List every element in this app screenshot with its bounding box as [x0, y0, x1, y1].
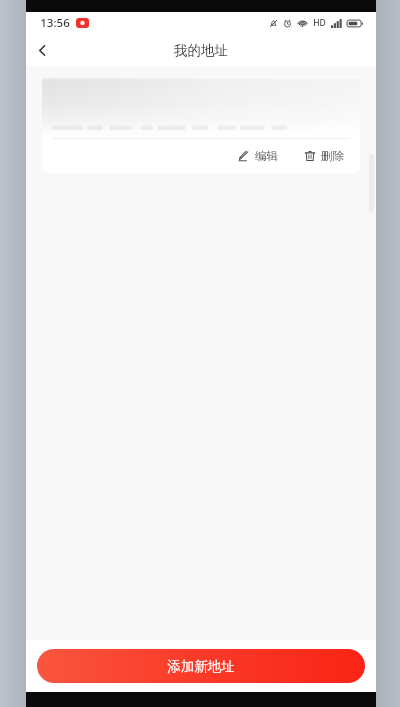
staticText: 我的地址 [174, 42, 228, 59]
button[interactable]: 添加新地址 [37, 649, 365, 683]
staticText: 编辑 [255, 149, 278, 163]
button[interactable]: 删除 [302, 146, 346, 166]
staticText: HD [313, 17, 326, 29]
staticText: 删除 [321, 149, 344, 163]
button[interactable]: 编辑 [236, 146, 280, 166]
staticText: 13:56 [40, 15, 70, 31]
button[interactable]: Back [26, 34, 58, 66]
staticText: 添加新地址 [167, 658, 235, 675]
button[interactable]: 编辑 [42, 76, 360, 173]
